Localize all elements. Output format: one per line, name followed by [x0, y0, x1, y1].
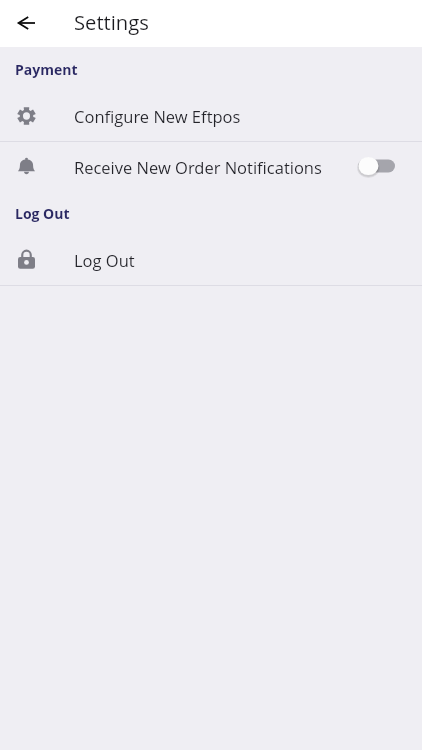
button[interactable]: Log Out	[0, 235, 422, 285]
staticText: Settings	[74, 8, 149, 36]
button[interactable]: Receive New Order Notifications	[355, 155, 395, 177]
staticText: Receive New Order Notifications	[74, 156, 322, 178]
staticText: Payment	[15, 60, 78, 79]
staticText: Configure New Eftpos	[74, 105, 241, 127]
button[interactable]: Receive New Order Notifications	[0, 142, 422, 192]
staticText: Log Out	[15, 204, 70, 223]
staticText: Log Out	[74, 249, 135, 271]
button[interactable]: Back	[8, 5, 44, 41]
button[interactable]: Configure New Eftpos	[0, 91, 422, 141]
